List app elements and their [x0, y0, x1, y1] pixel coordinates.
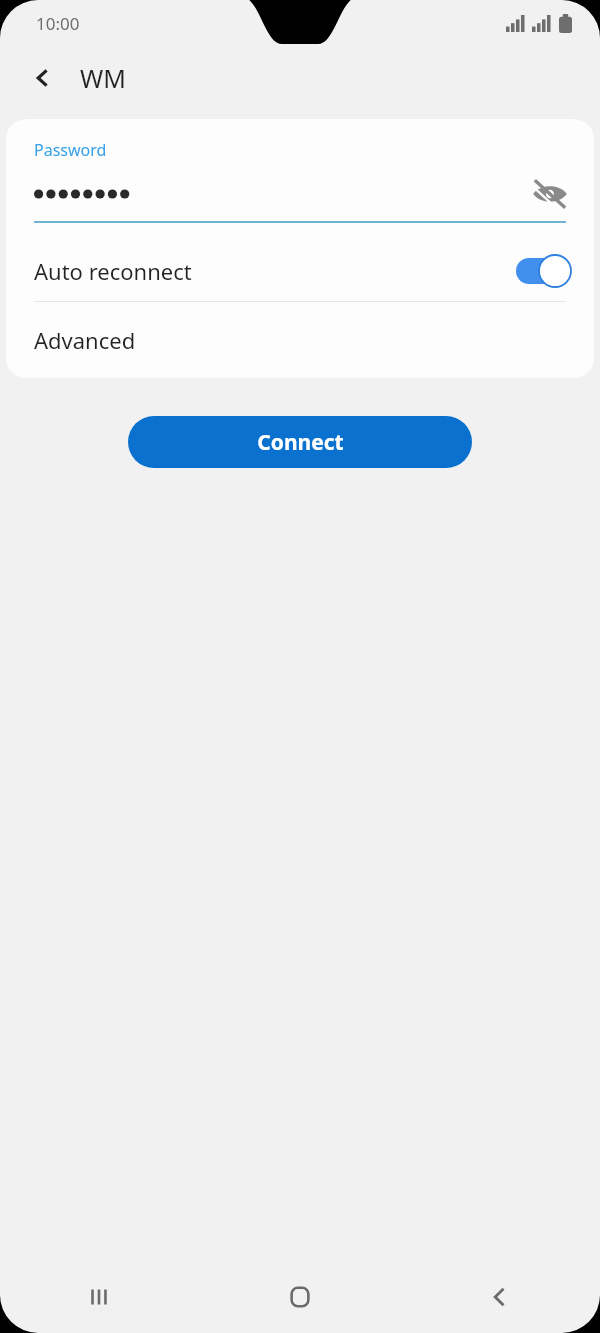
staticText: Auto reconnect [34, 256, 192, 286]
button[interactable]: Auto reconnect toggle [516, 254, 572, 288]
button[interactable]: Connect [128, 416, 472, 468]
button[interactable]: Password [6, 119, 594, 223]
button[interactable]: Back [400, 1260, 600, 1333]
button[interactable]: Home [200, 1260, 400, 1333]
staticText: 10:00 [36, 12, 80, 35]
button[interactable]: Back [22, 57, 64, 99]
button[interactable]: Advanced [6, 302, 594, 378]
button[interactable]: Recent apps [0, 1260, 200, 1333]
button[interactable]: Auto reconnect [6, 241, 594, 301]
staticText: Connect [257, 428, 344, 457]
staticText: Advanced [34, 325, 136, 355]
staticText: Password [34, 139, 107, 161]
staticText: WM [80, 61, 126, 95]
button[interactable]: Show password [528, 177, 572, 211]
